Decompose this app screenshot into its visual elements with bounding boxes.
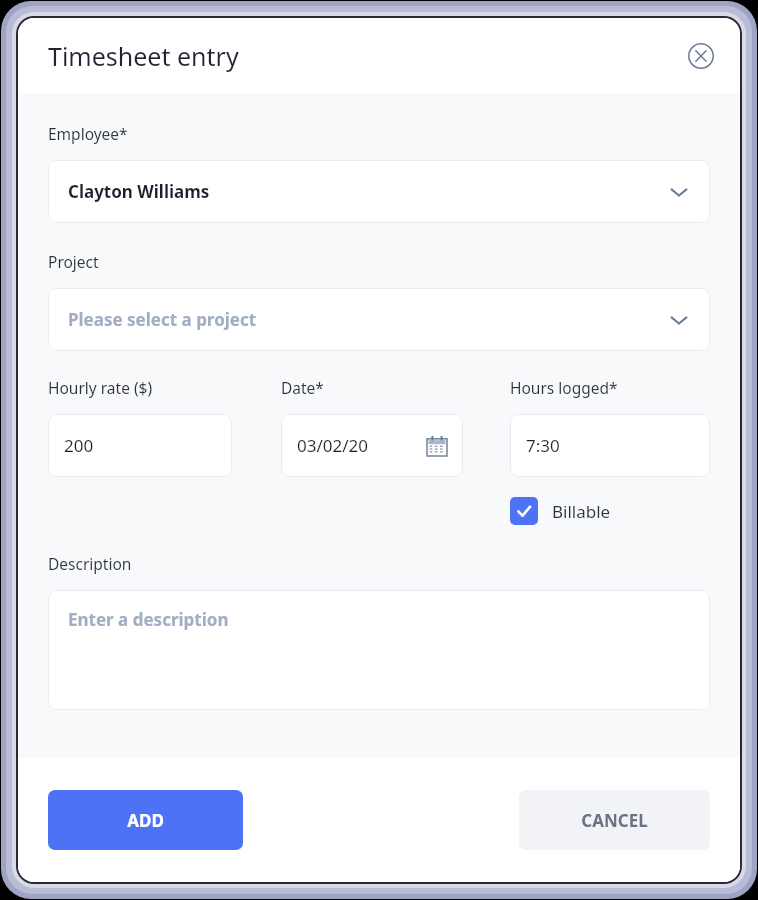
staticText: Timesheet entry	[48, 39, 239, 73]
button[interactable]: 200	[48, 414, 232, 477]
staticText: Hourly rate ($)	[48, 377, 153, 398]
button[interactable]: Enter a description	[48, 590, 710, 710]
staticText: 200	[64, 434, 94, 457]
button[interactable]: CANCEL	[519, 790, 710, 850]
button[interactable]: 7:30	[510, 414, 710, 477]
button[interactable]: Close	[684, 39, 718, 73]
staticText: 7:30	[526, 434, 560, 457]
staticText: 03/02/20	[297, 434, 368, 457]
staticText: Project	[48, 251, 99, 272]
staticText: CANCEL	[581, 809, 648, 832]
button[interactable]: 03/02/20	[281, 414, 463, 477]
staticText: Hours logged*	[510, 377, 618, 398]
button[interactable]: Clayton Williams	[48, 160, 710, 223]
staticText: Billable	[552, 500, 611, 523]
staticText: Date*	[281, 377, 324, 398]
button[interactable]: Billable	[510, 495, 611, 527]
staticText: ADD	[127, 809, 164, 832]
staticText: Enter a description	[68, 608, 229, 631]
staticText: Please select a project	[68, 308, 257, 331]
button[interactable]: ADD	[48, 790, 243, 850]
button[interactable]: Please select a project	[48, 288, 710, 351]
staticText: Clayton Williams	[68, 180, 210, 203]
staticText: Description	[48, 553, 132, 574]
staticText: Employee*	[48, 123, 128, 144]
